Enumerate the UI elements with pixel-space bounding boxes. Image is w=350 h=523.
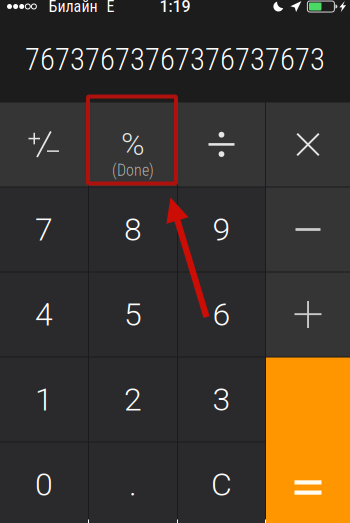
button[interactable]: Percent Done [89,102,177,186]
staticText: 1:19 [159,0,190,16]
staticText: 1 [35,381,53,418]
staticText: % [121,125,145,163]
staticText: 6 [212,296,230,333]
button[interactable]: 7 [0,187,88,271]
button[interactable]: . [89,442,177,523]
staticText: 4 [35,296,53,333]
staticText: 5 [124,296,142,333]
staticText: 9 [212,211,230,248]
button[interactable]: Plus minus [0,102,88,186]
button[interactable]: Multiply [266,102,350,186]
button[interactable]: 1 [0,357,88,441]
button[interactable]: 8 [89,187,177,271]
staticText: (Done) [112,161,154,180]
button[interactable]: 6 [178,272,265,356]
staticText: 7 [35,211,53,248]
staticText: 76737673767376737673 [25,41,325,77]
staticText: Билайн [48,0,97,16]
staticText: . [129,466,137,503]
button[interactable]: C [178,442,265,523]
staticText: 3 [212,381,230,418]
button[interactable]: 3 [178,357,265,441]
button[interactable]: Equals [266,357,350,523]
button[interactable]: Plus [266,272,350,356]
button[interactable]: Minus [266,187,350,271]
staticText: 8 [124,211,142,248]
staticText: 2 [124,381,142,418]
button[interactable]: 5 [89,272,177,356]
staticText: E [106,0,114,16]
button[interactable]: 4 [0,272,88,356]
staticText: 0 [35,466,53,503]
button[interactable]: 0 [0,442,88,523]
button[interactable]: 9 [178,187,265,271]
button[interactable]: Divide [178,102,265,186]
button[interactable]: 2 [89,357,177,441]
staticText: C [211,466,232,503]
